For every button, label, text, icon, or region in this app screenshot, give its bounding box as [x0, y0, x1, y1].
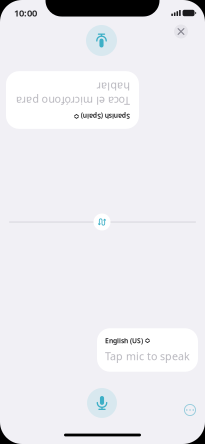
button[interactable]: Microphone [87, 388, 117, 418]
staticText: Toca el micrófono para hablar [15, 92, 129, 120]
button[interactable]: More options [179, 399, 201, 421]
button[interactable]: Spanish microphone [86, 25, 117, 56]
staticText: English (US) [105, 336, 143, 345]
staticText: Tap mic to speak [105, 349, 190, 363]
staticText: 10:00 [14, 7, 37, 19]
button[interactable]: Swap languages [90, 210, 113, 233]
button[interactable]: Close [169, 19, 193, 43]
